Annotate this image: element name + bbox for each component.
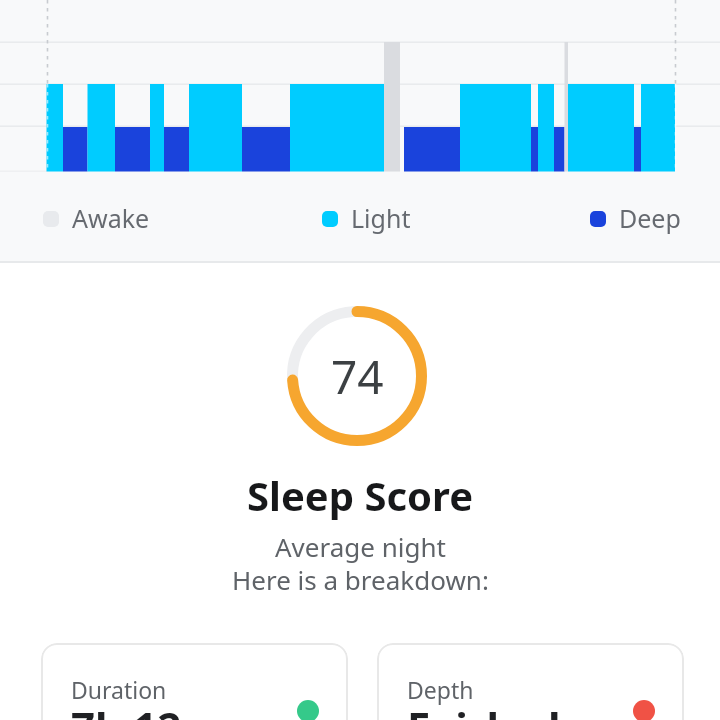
staticText: Fairly deep <box>407 698 638 720</box>
staticText: Sleep Score <box>247 468 474 522</box>
staticText: Depth <box>407 674 474 705</box>
button[interactable]: Depth <box>377 643 684 720</box>
staticText: Average night <box>275 529 446 564</box>
button[interactable]: Awake <box>43 201 150 235</box>
button[interactable]: Duration <box>41 643 348 720</box>
staticText: Here is a breakdown: <box>232 562 489 597</box>
button[interactable]: Light <box>322 201 411 235</box>
staticText: Awake <box>72 201 150 235</box>
staticText: 7h 12m <box>71 698 223 720</box>
staticText: Deep <box>619 201 681 235</box>
button[interactable]: Deep <box>590 201 681 235</box>
staticText: Duration <box>71 674 167 705</box>
staticText: 74 <box>331 345 384 408</box>
staticText: Light <box>351 201 411 235</box>
